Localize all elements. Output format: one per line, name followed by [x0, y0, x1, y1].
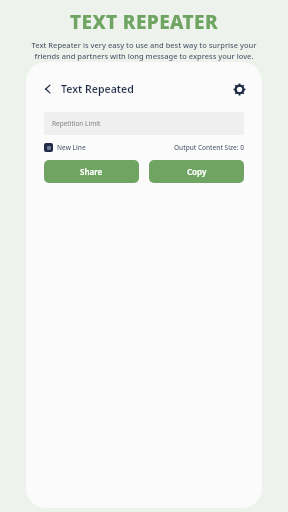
staticText: Repetition Limit	[52, 119, 101, 128]
staticText: TEXT REPEATER	[70, 9, 219, 35]
staticText: New Line	[57, 143, 86, 152]
button[interactable]: Back	[40, 81, 56, 97]
button[interactable]: New Line	[44, 143, 86, 152]
staticText: Text Repeater is very easy to use and be…	[22, 40, 266, 61]
button[interactable]: Repetition Limit	[44, 112, 244, 135]
button[interactable]: Copy	[149, 160, 244, 183]
staticText: Text Repeated	[61, 82, 134, 96]
button[interactable]: Share	[44, 160, 139, 183]
staticText: Output Content Size: 0	[174, 143, 244, 152]
staticText: Share	[80, 166, 103, 177]
button[interactable]: Settings	[230, 80, 248, 98]
staticText: Copy	[187, 166, 207, 177]
